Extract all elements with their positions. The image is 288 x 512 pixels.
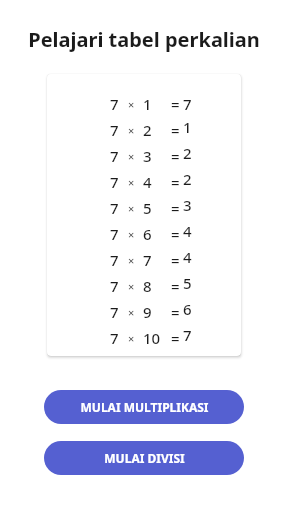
staticText: 42 xyxy=(183,221,199,247)
staticText: = xyxy=(171,120,180,140)
staticText: = xyxy=(171,250,180,270)
staticText: 70 xyxy=(183,325,199,351)
staticText: 6 xyxy=(143,224,152,244)
staticText: 7 xyxy=(110,198,119,218)
staticText: 7 xyxy=(110,328,119,348)
staticText: 21 xyxy=(183,143,199,169)
staticText: = xyxy=(171,224,180,244)
staticText: × xyxy=(128,149,135,164)
staticText: 63 xyxy=(183,299,199,325)
staticText: 28 xyxy=(183,169,199,195)
staticText: 7 xyxy=(110,94,119,114)
staticText: = xyxy=(171,146,180,166)
staticText: × xyxy=(128,97,135,112)
staticText: 7 xyxy=(110,120,119,140)
staticText: × xyxy=(128,175,135,190)
staticText: 4 xyxy=(143,172,152,192)
staticText: 10 xyxy=(143,328,161,348)
staticText: 7 xyxy=(110,224,119,244)
staticText: = xyxy=(171,302,180,322)
staticText: 7 xyxy=(110,172,119,192)
staticText: 8 xyxy=(143,276,152,296)
staticText: × xyxy=(128,305,135,320)
staticText: 9 xyxy=(143,302,152,322)
staticText: 7 xyxy=(183,94,192,114)
staticText: 7 xyxy=(110,276,119,296)
staticText: × xyxy=(128,279,135,294)
staticText: = xyxy=(171,198,180,218)
staticText: 1 xyxy=(143,94,152,114)
staticText: 7 xyxy=(110,250,119,270)
staticText: MULAI DIVISI xyxy=(104,450,185,466)
button[interactable]: MULAI DIVISI xyxy=(44,441,244,475)
staticText: × xyxy=(128,227,135,242)
staticText: 35 xyxy=(183,195,199,221)
staticText: × xyxy=(128,331,135,346)
staticText: 14 xyxy=(183,117,199,143)
button[interactable]: MULAI MULTIPLIKASI xyxy=(44,390,244,424)
staticText: × xyxy=(128,123,135,138)
staticText: × xyxy=(128,201,135,216)
staticText: 56 xyxy=(183,273,199,299)
staticText: 7 xyxy=(110,146,119,166)
staticText: = xyxy=(171,172,180,192)
staticText: = xyxy=(171,276,180,296)
staticText: Pelajari tabel perkalian xyxy=(28,26,260,53)
staticText: = xyxy=(171,328,180,348)
staticText: 7 xyxy=(143,250,152,270)
staticText: 5 xyxy=(143,198,152,218)
staticText: 49 xyxy=(183,247,199,273)
staticText: 3 xyxy=(143,146,152,166)
staticText: × xyxy=(128,253,135,268)
staticText: MULAI MULTIPLIKASI xyxy=(80,399,209,415)
staticText: 7 xyxy=(110,302,119,322)
staticText: 2 xyxy=(143,120,152,140)
staticText: = xyxy=(171,94,180,114)
